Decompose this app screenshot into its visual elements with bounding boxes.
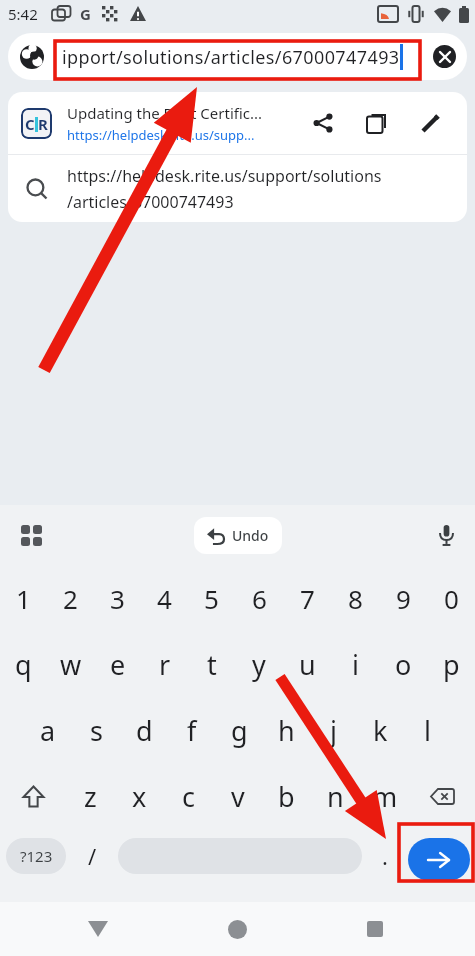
staticText: G: [80, 4, 91, 24]
staticText: c: [182, 778, 195, 815]
button[interactable]: [408, 838, 470, 881]
button[interactable]: [78, 909, 118, 949]
button[interactable]: l: [404, 697, 451, 763]
button[interactable]: a: [24, 697, 72, 763]
button[interactable]: [409, 763, 475, 829]
staticText: s: [90, 712, 103, 749]
button[interactable]: g: [216, 697, 263, 763]
staticText: .: [382, 841, 388, 871]
staticText: v: [231, 778, 245, 815]
staticText: 7: [300, 581, 315, 616]
staticText: https://helpdesk.rite.us/supp...: [67, 126, 255, 144]
button[interactable]: ipport/solutions/articles/67000747493: [8, 33, 467, 80]
button[interactable]: [0, 763, 66, 829]
staticText: u: [299, 646, 316, 683]
button[interactable]: [357, 103, 397, 143]
button[interactable]: p: [427, 631, 475, 697]
staticText: r: [159, 646, 171, 683]
button[interactable]: [16, 520, 46, 550]
button[interactable]: m: [360, 763, 409, 829]
staticText: /articles/67000747493: [67, 191, 234, 213]
button[interactable]: e: [94, 631, 141, 697]
button[interactable]: n: [311, 763, 360, 829]
button[interactable]: h: [263, 697, 310, 763]
button[interactable]: /: [66, 838, 118, 874]
button[interactable]: o: [379, 631, 427, 697]
staticText: h: [278, 712, 295, 749]
button[interactable]: x: [115, 763, 164, 829]
button[interactable]: [431, 520, 461, 550]
button[interactable]: d: [120, 697, 168, 763]
staticText: Undo: [232, 526, 269, 545]
staticText: p: [443, 646, 460, 683]
staticText: o: [395, 646, 412, 683]
button[interactable]: 0: [427, 565, 475, 631]
button[interactable]: [433, 45, 456, 68]
staticText: C: [25, 114, 35, 134]
button[interactable]: 7: [283, 565, 331, 631]
button[interactable]: f: [168, 697, 216, 763]
button[interactable]: https://helpdesk.rite.us/support/solutio…: [8, 155, 467, 222]
button[interactable]: Undo: [194, 517, 282, 554]
button[interactable]: 9: [379, 565, 427, 631]
button[interactable]: .: [362, 838, 408, 874]
button[interactable]: s: [72, 697, 120, 763]
staticText: e: [110, 646, 126, 683]
staticText: t: [207, 646, 217, 683]
staticText: w: [60, 646, 82, 683]
button[interactable]: [355, 909, 395, 949]
button[interactable]: 5: [188, 565, 235, 631]
staticText: 0: [444, 581, 459, 616]
button[interactable]: i: [331, 631, 379, 697]
staticText: https://helpdesk.rite.us/support/solutio…: [67, 165, 382, 187]
staticText: ?123: [20, 846, 53, 866]
button[interactable]: 8: [331, 565, 379, 631]
staticText: a: [40, 712, 56, 749]
button[interactable]: b: [262, 763, 311, 829]
staticText: 9: [396, 581, 411, 616]
button[interactable]: 2: [47, 565, 94, 631]
button[interactable]: [303, 103, 343, 143]
staticText: 1: [16, 581, 31, 616]
staticText: 4: [157, 581, 172, 616]
button[interactable]: k: [357, 697, 404, 763]
staticText: q: [15, 646, 32, 683]
staticText: z: [84, 778, 97, 815]
staticText: Updating the Root Certific...: [67, 103, 263, 123]
button[interactable]: z: [66, 763, 115, 829]
button[interactable]: 1: [0, 565, 47, 631]
button[interactable]: C: [8, 92, 467, 154]
staticText: b: [278, 778, 295, 815]
staticText: 5:42: [8, 4, 38, 24]
button[interactable]: q: [0, 631, 47, 697]
staticText: y: [252, 646, 266, 683]
button[interactable]: c: [164, 763, 213, 829]
button[interactable]: 4: [141, 565, 188, 631]
button[interactable]: [217, 909, 257, 949]
button[interactable]: ?123: [6, 838, 66, 874]
staticText: R: [38, 114, 48, 134]
staticText: 5: [204, 581, 219, 616]
staticText: g: [231, 712, 248, 749]
button[interactable]: t: [188, 631, 235, 697]
staticText: x: [132, 778, 147, 815]
staticText: j: [330, 712, 337, 749]
staticText: 3: [110, 581, 125, 616]
button[interactable]: r: [141, 631, 188, 697]
button[interactable]: w: [47, 631, 94, 697]
staticText: n: [327, 778, 344, 815]
staticText: 2: [63, 581, 78, 616]
button[interactable]: 6: [235, 565, 283, 631]
button[interactable]: v: [213, 763, 262, 829]
staticText: 8: [348, 581, 363, 616]
staticText: d: [136, 712, 153, 749]
staticText: 6: [252, 581, 267, 616]
button[interactable]: [411, 103, 451, 143]
button[interactable]: u: [283, 631, 331, 697]
button[interactable]: j: [310, 697, 357, 763]
staticText: k: [373, 712, 388, 749]
button[interactable]: 3: [94, 565, 141, 631]
staticText: m: [372, 778, 398, 815]
button[interactable]: y: [235, 631, 283, 697]
